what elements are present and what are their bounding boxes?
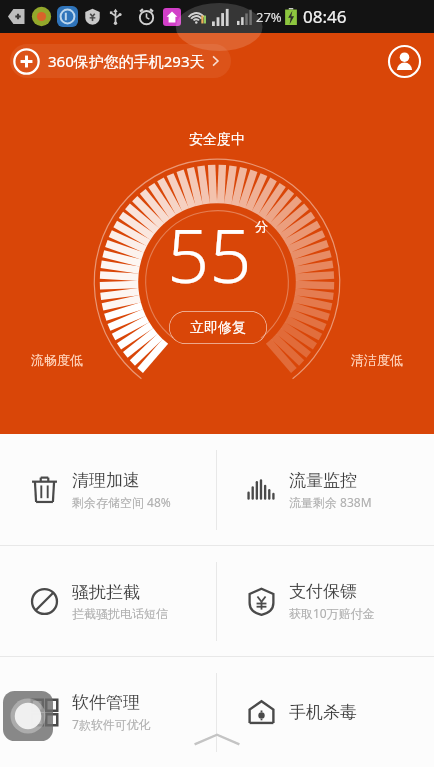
staticText: 7款软件可优化	[72, 716, 151, 732]
staticText: 流量监控	[289, 470, 357, 491]
staticText: 软件管理	[72, 692, 140, 713]
staticText: 手机杀毒	[289, 702, 357, 723]
staticText: 分	[255, 218, 268, 234]
staticText: 清洁度低	[351, 352, 403, 368]
staticText: 支付保镖	[289, 581, 357, 602]
staticText: 拦截骚扰电话短信	[72, 606, 168, 621]
button[interactable]: 清理加速	[0, 434, 217, 545]
button[interactable]: 骚扰拦截	[0, 546, 217, 656]
button[interactable]: Account	[384, 41, 424, 81]
staticText: 流量剩余 838M	[289, 494, 372, 510]
button[interactable]: 立即修复	[169, 311, 267, 344]
button[interactable]: Expand	[189, 729, 245, 751]
staticText: 立即修复	[190, 319, 246, 337]
button[interactable]: 支付保镖	[217, 546, 434, 656]
staticText: 360保护您的手机293天	[48, 51, 205, 71]
staticText: 08:46	[303, 5, 347, 28]
button[interactable]: 360保护您的手机293天	[10, 44, 231, 78]
staticText: 清理加速	[72, 470, 140, 491]
staticText: 流畅度低	[31, 352, 83, 368]
button[interactable]: Assistive touch	[1, 689, 55, 743]
staticText: 剩余存储空间 48%	[72, 494, 171, 510]
staticText: 55	[167, 204, 252, 305]
button[interactable]: 手机杀毒	[217, 657, 434, 767]
staticText: 安全度中	[189, 131, 245, 149]
staticText: 27%	[256, 8, 282, 26]
button[interactable]: 流量监控	[217, 434, 434, 545]
staticText: 获取10万赔付金	[289, 605, 375, 621]
button[interactable]: 软件管理	[0, 657, 217, 767]
staticText: 骚扰拦截	[72, 582, 140, 603]
